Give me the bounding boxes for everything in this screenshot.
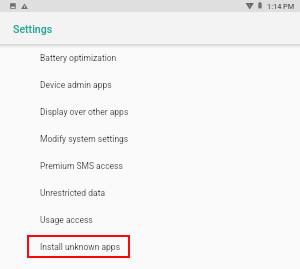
staticText: Premium SMS access — [40, 161, 123, 171]
button[interactable]: Install unknown apps — [27, 235, 130, 258]
staticText: Install unknown apps — [40, 242, 121, 252]
button[interactable]: Usage access — [0, 206, 300, 233]
staticText: Unrestricted data — [40, 188, 106, 198]
staticText: Usage access — [40, 215, 93, 225]
staticText: Settings — [13, 23, 53, 35]
button[interactable]: Premium SMS access — [0, 152, 300, 179]
button[interactable]: Modify system settings — [0, 125, 300, 152]
staticText: Device admin apps — [40, 80, 112, 90]
button[interactable]: Unrestricted data — [0, 179, 300, 206]
button[interactable]: Battery optimization — [0, 44, 300, 71]
staticText: Modify system settings — [40, 134, 129, 144]
staticText: Display over other apps — [40, 107, 129, 117]
button[interactable]: Display over other apps — [0, 98, 300, 125]
staticText: 1:14 PM — [267, 2, 295, 11]
button[interactable]: Device admin apps — [0, 71, 300, 98]
staticText: Battery optimization — [40, 53, 117, 63]
